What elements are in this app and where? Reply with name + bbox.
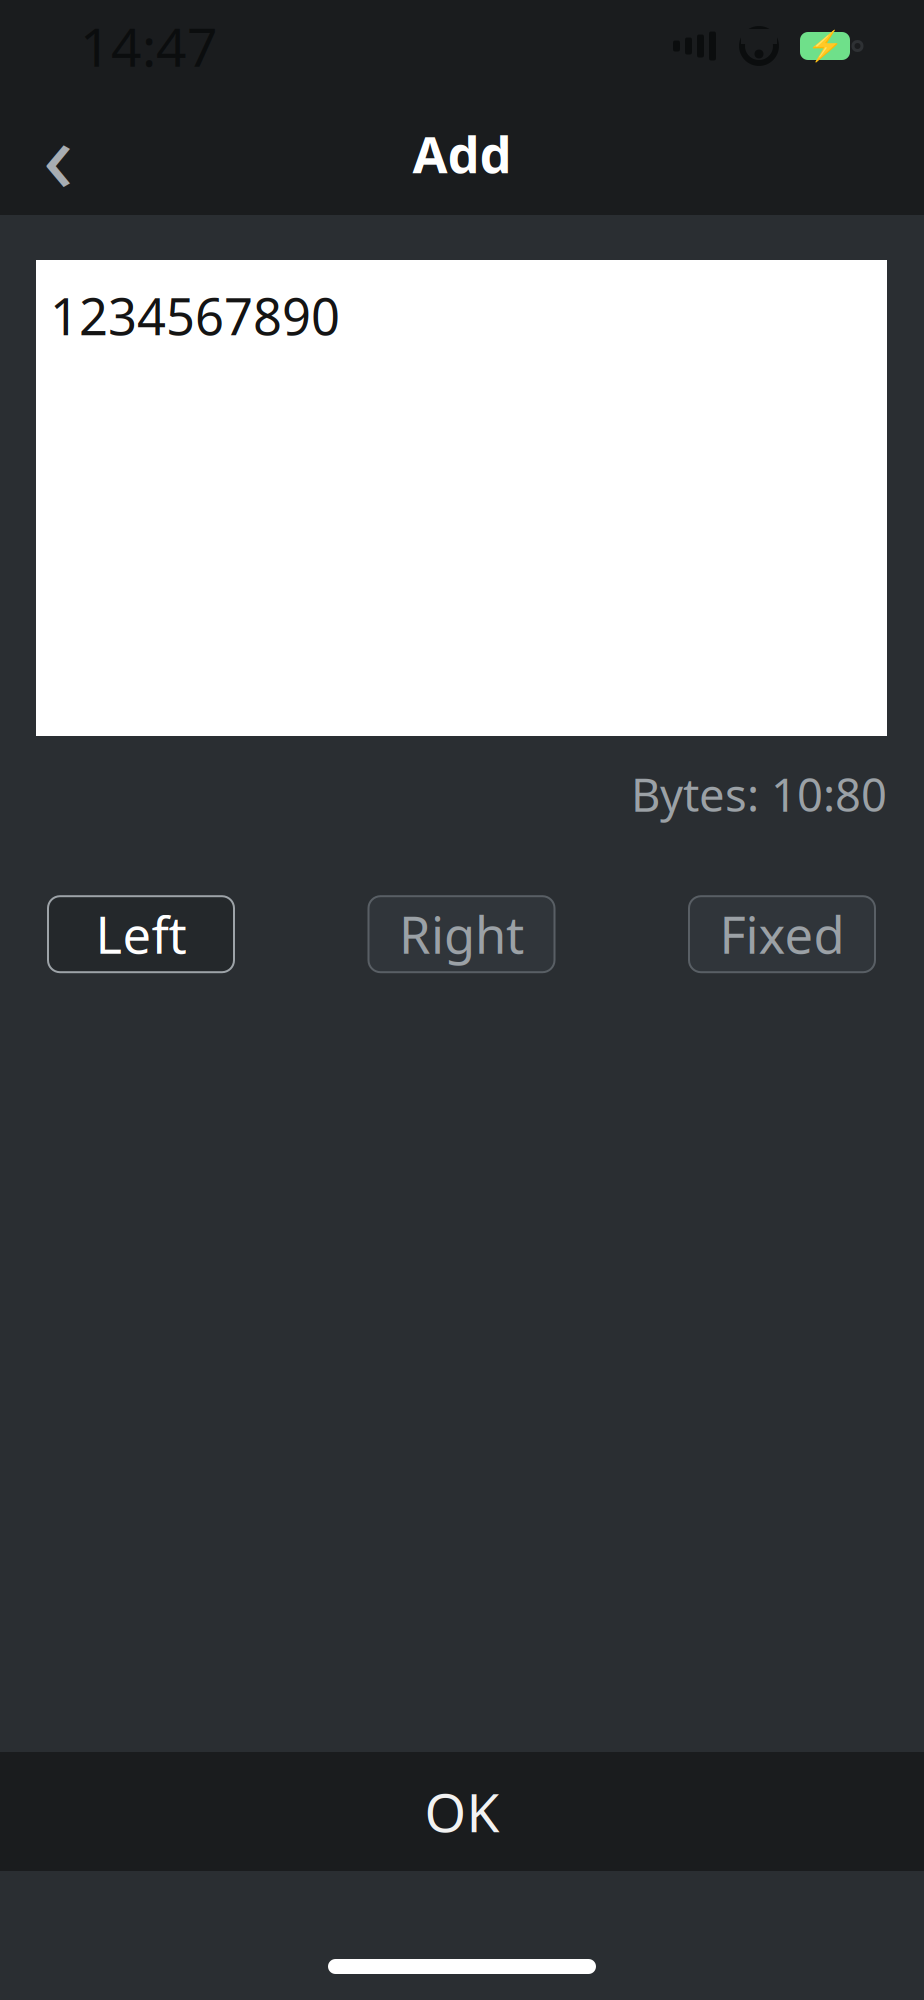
staticText: 1234567890 <box>50 282 340 349</box>
staticText: 14:47 <box>80 11 218 81</box>
staticText: ‹ <box>42 86 73 221</box>
staticText: Fixed <box>719 901 844 968</box>
button[interactable]: OK <box>0 1752 924 1871</box>
staticText: Bytes: 10:80 <box>631 764 887 824</box>
staticText: ⚡ <box>806 29 843 63</box>
staticText: Right <box>399 901 524 968</box>
button[interactable]: Back <box>10 103 106 203</box>
staticText: Left <box>95 901 186 968</box>
button[interactable]: Fixed <box>689 896 875 972</box>
staticText: Add <box>412 120 511 187</box>
button[interactable]: Right <box>368 896 554 972</box>
button[interactable]: Left <box>48 896 234 972</box>
staticText: OK <box>424 1776 499 1847</box>
